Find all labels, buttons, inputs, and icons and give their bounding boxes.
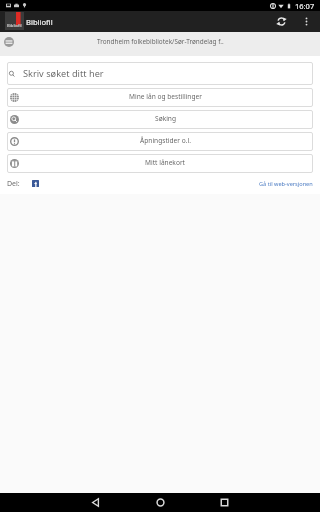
staticText: Trondheim folkebibliotek/Sør-Trøndelag f… (97, 37, 224, 46)
staticText: Skriv søket ditt her (23, 67, 104, 80)
staticText: 16:07 (295, 1, 315, 11)
button[interactable]: Recent apps (212, 493, 236, 512)
button[interactable]: Mine lån og bestillinger (7, 88, 313, 107)
staticText: Del: (7, 179, 20, 189)
staticText: Søking (155, 114, 176, 123)
button[interactable]: Refresh (271, 11, 292, 32)
staticText: Åpningstider o.l. (140, 136, 191, 145)
staticText: Bibliofil (26, 17, 53, 27)
button[interactable]: Gå til web-versjonen (259, 180, 313, 188)
button[interactable]: More options (296, 11, 317, 32)
button[interactable]: Søking (7, 110, 313, 129)
button[interactable]: Back (83, 493, 107, 512)
staticText: Mine lån og bestillinger (129, 92, 202, 101)
button[interactable]: Home (148, 493, 172, 512)
staticText: Bibliofil (7, 23, 22, 29)
staticText: Mitt lånekort (145, 158, 185, 167)
button[interactable]: Skriv søket ditt her (7, 62, 313, 85)
staticText: Gå til web-versjonen (259, 180, 313, 188)
button[interactable]: Mitt lånekort (7, 154, 313, 173)
button[interactable]: Share on Facebook (32, 180, 39, 187)
button[interactable]: Åpningstider o.l. (7, 132, 313, 151)
button[interactable]: Menu (1, 34, 17, 50)
